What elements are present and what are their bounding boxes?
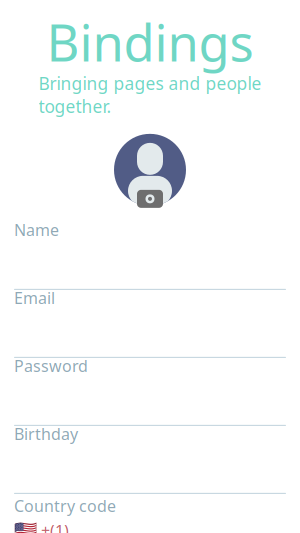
staticText: 🇺🇸 [14, 520, 37, 533]
button[interactable]: Country code [14, 494, 286, 533]
staticText: Birthday [14, 423, 78, 444]
staticText: Name [14, 219, 59, 240]
button[interactable]: Birthday [14, 426, 286, 494]
staticText: Bindings [46, 8, 253, 75]
staticText: +(1) [41, 520, 69, 533]
button[interactable]: Change profile photo [114, 132, 186, 208]
staticText: Email [14, 287, 55, 308]
staticText: Password [14, 355, 88, 376]
button[interactable]: Email [14, 290, 286, 358]
button[interactable]: Name [14, 222, 286, 290]
button[interactable]: Password [14, 358, 286, 426]
staticText: Bringing pages and people together. [38, 72, 261, 118]
staticText: Country code [14, 495, 116, 516]
